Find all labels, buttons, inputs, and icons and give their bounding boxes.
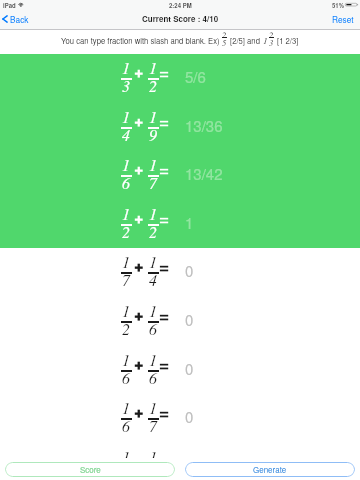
staticText: 1	[149, 251, 158, 272]
staticText: 2	[269, 29, 274, 41]
staticText: 1	[149, 397, 158, 418]
staticText: 1	[149, 106, 158, 127]
staticText: 3	[269, 37, 274, 49]
button[interactable]: Reset	[332, 13, 354, 25]
staticText: [2/5] and	[230, 35, 260, 46]
staticText: 1	[149, 57, 158, 78]
button[interactable]: 1	[0, 394, 360, 443]
button[interactable]: Generate	[185, 462, 355, 477]
staticText: 6	[122, 367, 131, 388]
staticText: 1	[122, 397, 131, 418]
staticText: 1	[185, 212, 194, 233]
staticText: Score	[80, 464, 101, 475]
staticText: 6	[149, 318, 158, 339]
staticText: 1	[122, 57, 131, 78]
staticText: [1 2/3]	[277, 35, 299, 46]
staticText: 2	[122, 318, 131, 339]
staticText: 2:24 PM	[169, 1, 192, 10]
button[interactable]: 1	[0, 248, 360, 297]
button[interactable]: 1	[0, 54, 360, 103]
staticText: 1	[122, 154, 131, 175]
staticText: 13/36	[185, 115, 223, 136]
staticText: 1	[122, 300, 131, 321]
staticText: 7	[149, 172, 158, 193]
staticText: 1	[122, 251, 131, 272]
staticText: 3	[122, 75, 131, 96]
staticText: 13/42	[185, 163, 223, 184]
staticText: iPad	[3, 1, 16, 10]
staticText: 1	[122, 203, 131, 224]
button[interactable]: Score	[5, 462, 175, 477]
staticText: 0	[185, 260, 194, 281]
button[interactable]: 1	[0, 346, 360, 395]
staticText: 7	[122, 269, 131, 290]
staticText: 1	[122, 446, 131, 458]
button[interactable]: 1	[0, 151, 360, 200]
staticText: Generate	[253, 464, 287, 475]
staticText: 2	[149, 75, 158, 96]
staticText: 1	[149, 203, 158, 224]
staticText: 6	[122, 172, 131, 193]
staticText: 6	[122, 415, 131, 436]
staticText: 51%	[332, 1, 345, 10]
staticText: 0	[185, 309, 194, 330]
staticText: 2	[149, 221, 158, 242]
staticText: You can type fraction with slash and bla…	[61, 35, 220, 46]
staticText: 4	[122, 124, 131, 145]
staticText: Reset	[332, 13, 354, 25]
staticText: 6	[149, 367, 158, 388]
staticText: 1	[149, 154, 158, 175]
staticText: 1	[149, 300, 158, 321]
button[interactable]: 1	[0, 200, 360, 249]
staticText: 1	[149, 349, 158, 370]
staticText: Back	[10, 13, 29, 25]
staticText: 2	[122, 221, 131, 242]
staticText: 1	[149, 446, 158, 458]
button[interactable]: 1	[0, 103, 360, 152]
staticText: 4	[149, 269, 158, 290]
staticText: Current Score : 4/10	[142, 13, 219, 24]
staticText: 7	[149, 415, 158, 436]
staticText: 1	[263, 34, 268, 46]
staticText: 5	[222, 37, 227, 49]
staticText: 9	[149, 124, 158, 145]
staticText: 1	[122, 349, 131, 370]
button[interactable]: 1	[0, 297, 360, 346]
staticText: 1	[122, 106, 131, 127]
staticText: 2	[222, 29, 227, 41]
button[interactable]: Back	[2, 14, 29, 26]
staticText: 0	[185, 406, 194, 427]
staticText: 5/6	[185, 66, 206, 87]
button[interactable]: 1	[0, 443, 360, 458]
staticText: 0	[185, 358, 194, 379]
